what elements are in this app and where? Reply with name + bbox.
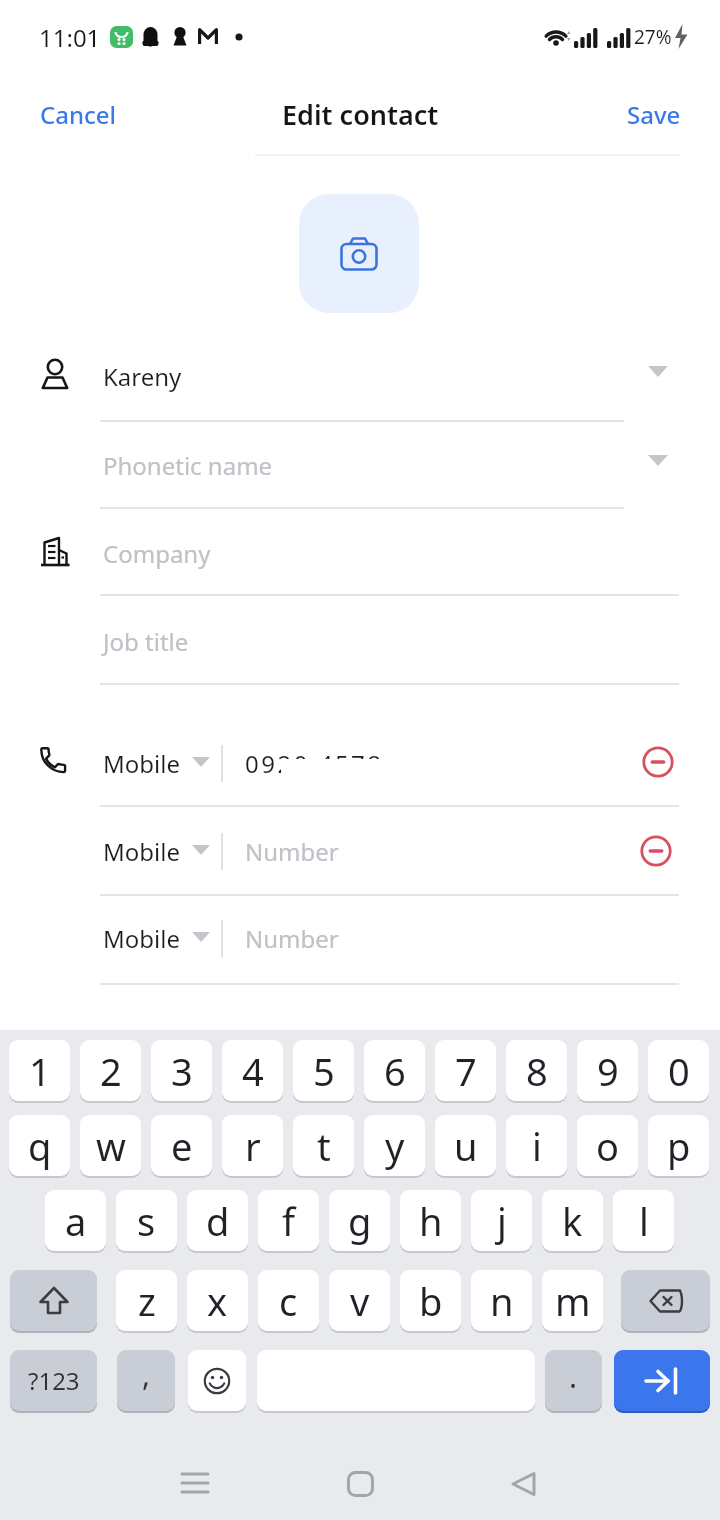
staticText: v [350,1275,370,1327]
staticText: p [667,1120,691,1172]
button[interactable]: z [116,1270,177,1331]
staticText: m [555,1275,591,1327]
button[interactable] [90,821,630,881]
button[interactable] [90,733,630,793]
staticText: h [419,1195,443,1247]
button[interactable]: 7 [435,1040,496,1101]
staticText: Mobile [103,922,180,955]
staticText: y [385,1120,405,1172]
staticText: 5 [313,1045,335,1097]
button[interactable]: 0 [648,1040,709,1101]
button[interactable]: 3 [151,1040,212,1101]
staticText: 1 [29,1045,51,1097]
button[interactable] [90,435,650,495]
staticText: 27% [634,24,672,50]
staticText: Mobile [103,835,180,868]
button[interactable]: e [151,1115,212,1176]
button[interactable]: h [400,1190,461,1251]
button[interactable] [90,908,630,968]
button[interactable]: r [222,1115,283,1176]
button[interactable]: q [9,1115,70,1176]
button[interactable]: . [545,1350,602,1411]
button[interactable] [10,1270,97,1331]
staticText: z [138,1275,156,1327]
staticText: q [28,1120,52,1172]
button[interactable]: k [542,1190,603,1251]
staticText: Cancel [40,98,117,131]
staticText: 2 [100,1045,122,1097]
button[interactable] [90,611,680,671]
button[interactable]: 9 [577,1040,638,1101]
button[interactable]: o [577,1115,638,1176]
button[interactable] [347,1471,374,1497]
button[interactable]: 2 [80,1040,141,1101]
button[interactable] [181,1471,209,1497]
staticText: b [419,1275,443,1327]
staticText: t [317,1120,331,1172]
staticText: d [206,1195,230,1247]
button[interactable]: l [613,1190,674,1251]
button[interactable] [621,1270,710,1331]
staticText: w [96,1120,126,1172]
button[interactable]: 4 [222,1040,283,1101]
staticText: ?123 [28,1364,80,1397]
staticText: Phonetic name [103,449,273,482]
button[interactable]: w [80,1115,141,1176]
button[interactable] [188,1350,246,1411]
staticText: o [596,1120,619,1172]
button[interactable] [614,1350,710,1411]
button[interactable]: v [329,1270,390,1331]
button[interactable]: p [648,1115,709,1176]
button[interactable] [90,346,650,406]
staticText: k [562,1195,583,1247]
button[interactable]: n [471,1270,532,1331]
button[interactable]: 5 [293,1040,354,1101]
button[interactable]: x [187,1270,248,1331]
staticText: Save [627,98,681,131]
button[interactable]: 1 [9,1040,70,1101]
button[interactable] [90,523,680,583]
staticText: Company [103,537,211,570]
button[interactable]: Save [600,92,700,136]
button[interactable]: ?123 [10,1350,97,1411]
staticText: Edit contact [282,96,439,133]
staticText: 0 [668,1045,690,1097]
staticText: x [207,1275,228,1327]
staticText: Number [245,835,339,868]
staticText: l [639,1195,649,1247]
button[interactable]: j [471,1190,532,1251]
button[interactable] [299,194,419,313]
button[interactable] [642,746,674,778]
button[interactable]: y [364,1115,425,1176]
staticText: 3 [171,1045,193,1097]
staticText: 6 [384,1045,406,1097]
button[interactable]: u [435,1115,496,1176]
button[interactable]: 8 [506,1040,567,1101]
button[interactable]: c [258,1270,319,1331]
button[interactable]: i [506,1115,567,1176]
staticText: r [245,1120,261,1172]
button[interactable]: a [45,1190,106,1251]
button[interactable]: Cancel [30,92,130,136]
button[interactable]: d [187,1190,248,1251]
button[interactable]: 6 [364,1040,425,1101]
button[interactable]: t [293,1115,354,1176]
button[interactable]: f [258,1190,319,1251]
staticText: 4 [242,1045,264,1097]
staticText: n [490,1275,514,1327]
staticText: a [65,1195,87,1247]
staticText: Number [245,922,339,955]
button[interactable] [510,1471,537,1497]
staticText: s [137,1195,156,1247]
staticText: Job title [103,625,189,658]
staticText: 9 [597,1045,619,1097]
button[interactable]: m [542,1270,603,1331]
button[interactable]: , [117,1350,175,1411]
button[interactable]: b [400,1270,461,1331]
button[interactable]: g [329,1190,390,1251]
button[interactable]: s [116,1190,177,1251]
staticText: i [532,1120,542,1172]
staticText: c [279,1275,298,1327]
button[interactable] [640,835,672,867]
